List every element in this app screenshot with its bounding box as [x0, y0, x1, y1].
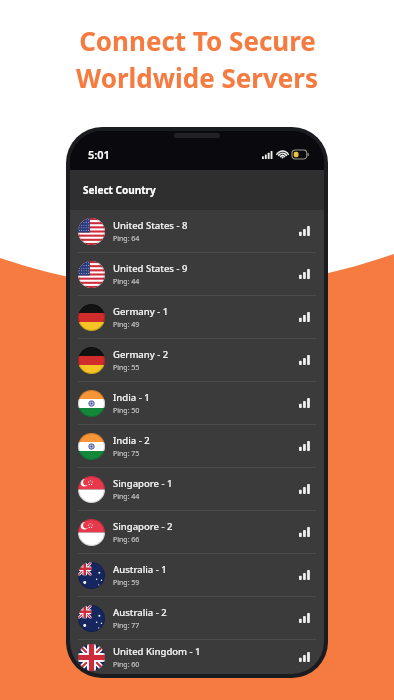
staticText: Ping: 75	[113, 449, 140, 459]
button[interactable]: Singapore - 1	[70, 468, 324, 510]
staticText: India - 2	[113, 434, 150, 447]
staticText: United States - 8	[113, 219, 188, 232]
button[interactable]: United Kingdom - 1	[70, 640, 324, 674]
staticText: Singapore - 1	[113, 477, 173, 490]
staticText: Ping: 64	[113, 234, 140, 244]
staticText: United States - 9	[113, 262, 188, 275]
other: Signal strength	[299, 312, 311, 322]
staticText: Ping: 44	[113, 277, 140, 287]
staticText: Ping: 59	[113, 578, 140, 588]
button[interactable]: United States - 9	[70, 253, 324, 295]
staticText: Ping: 44	[113, 492, 140, 502]
other: Signal strength	[299, 269, 311, 279]
button[interactable]: Germany - 1	[70, 296, 324, 338]
staticText: Australia - 2	[113, 606, 167, 619]
staticText: 5:01	[88, 147, 110, 162]
button[interactable]: Australia - 2	[70, 597, 324, 639]
other: Signal strength	[299, 570, 311, 580]
staticText: Ping: 66	[113, 535, 140, 545]
button[interactable]: Singapore - 2	[70, 511, 324, 553]
button[interactable]: India - 2	[70, 425, 324, 467]
staticText: Connect To Secure	[79, 23, 316, 58]
staticText: United Kingdom - 1	[113, 645, 201, 658]
staticText: Singapore - 2	[113, 520, 173, 533]
other: Signal strength	[299, 226, 311, 236]
other: Signal strength	[299, 398, 311, 408]
staticText: Ping: 50	[113, 406, 140, 416]
staticText: Ping: 77	[113, 621, 140, 631]
other: Signal strength	[299, 652, 311, 662]
button[interactable]: India - 1	[70, 382, 324, 424]
staticText: Select Country	[83, 183, 156, 197]
staticText: Germany - 1	[113, 305, 169, 318]
staticText: Ping: 55	[113, 363, 140, 373]
other: Signal strength	[299, 355, 311, 365]
other: Signal strength	[299, 613, 311, 623]
staticText: Germany - 2	[113, 348, 169, 361]
staticText: India - 1	[113, 391, 150, 404]
other: Signal strength	[299, 527, 311, 537]
staticText: Worldwide Servers	[76, 60, 318, 95]
other: Signal strength	[299, 484, 311, 494]
button[interactable]: Germany - 2	[70, 339, 324, 381]
button[interactable]: Australia - 1	[70, 554, 324, 596]
other: Signal strength	[299, 441, 311, 451]
staticText: Australia - 1	[113, 563, 167, 576]
staticText: Ping: 60	[113, 660, 140, 670]
staticText: Ping: 49	[113, 320, 140, 330]
button[interactable]: United States - 8	[70, 210, 324, 252]
